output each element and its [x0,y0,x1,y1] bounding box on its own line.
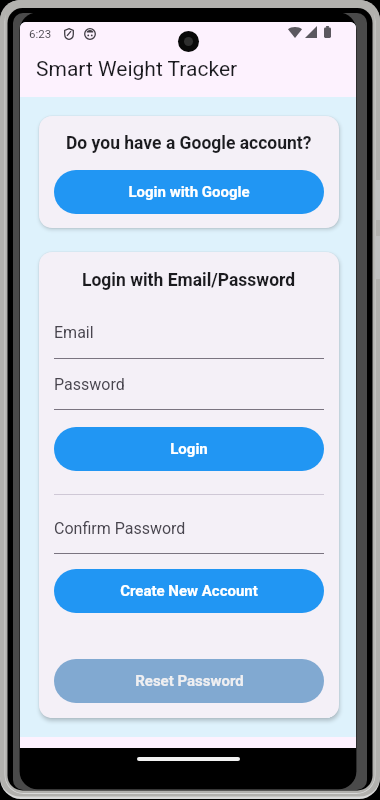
staticText: 6:23 [29,27,52,40]
staticText: Login with Google [128,183,250,201]
staticText: Smart Weight Tracker [36,57,238,82]
staticText: Confirm Password [54,519,186,538]
staticText: Password [54,375,125,394]
button[interactable]: Create New Account [54,569,324,613]
button[interactable]: Login with Google [54,170,324,214]
button[interactable]: Login [54,427,324,471]
button[interactable]: Reset Password [54,659,324,703]
staticText: Email [54,323,94,342]
staticText: Login [170,440,208,458]
staticText: Create New Account [120,582,258,600]
staticText: Reset Password [135,672,244,690]
staticText: Do you have a Google account? [66,133,312,154]
staticText: Login with Email/Password [82,270,296,291]
